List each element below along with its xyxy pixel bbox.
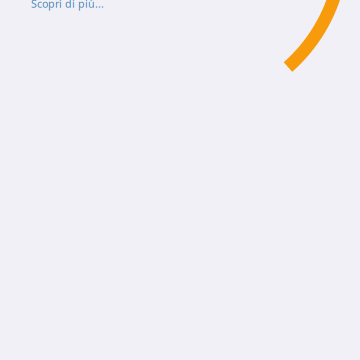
button[interactable]: Scopri di più... bbox=[31, 0, 104, 11]
staticText: Scopri di più... bbox=[31, 0, 104, 11]
